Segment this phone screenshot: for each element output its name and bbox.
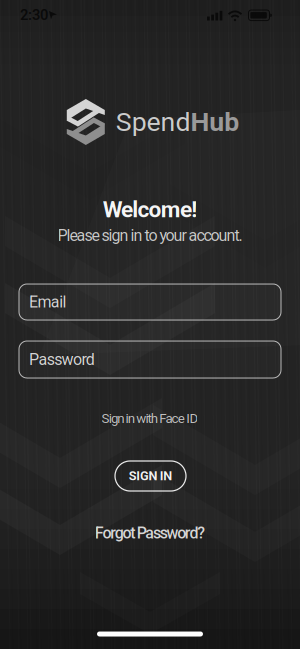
staticText: Please sign in to your account. bbox=[57, 226, 242, 245]
staticText: Email bbox=[29, 293, 67, 311]
staticText: Welcome! bbox=[103, 197, 197, 222]
button[interactable]: SIGN IN bbox=[115, 461, 186, 491]
staticText: Spend bbox=[116, 107, 190, 137]
staticText: Password bbox=[29, 350, 95, 369]
button[interactable]: Forgot Password? bbox=[95, 524, 205, 542]
staticText: SIGN IN bbox=[129, 469, 172, 483]
staticText: Hub bbox=[190, 107, 239, 137]
button[interactable]: Sign in with Face ID bbox=[102, 411, 198, 426]
button[interactable]: Password bbox=[19, 341, 281, 378]
staticText: Sign in with Face ID bbox=[102, 411, 198, 426]
staticText: 2:30 bbox=[20, 7, 48, 23]
button[interactable]: Email bbox=[19, 284, 281, 320]
staticText: Forgot Password? bbox=[95, 524, 205, 542]
